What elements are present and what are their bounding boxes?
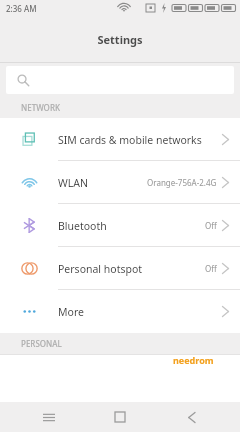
button[interactable]: More: [0, 290, 240, 333]
staticText: Bluetooth: [58, 219, 107, 233]
button[interactable]: Personal hotspot: [0, 247, 240, 290]
staticText: Off: [205, 220, 217, 231]
staticText: Orange-756A-2.4G: [147, 177, 217, 188]
button[interactable]: Bluetooth: [0, 204, 240, 247]
staticText: PERSONAL: [21, 338, 62, 349]
button[interactable]: WLAN: [0, 161, 240, 204]
staticText: 2:36 AM: [6, 3, 37, 14]
staticText: Personal hotspot: [58, 262, 143, 276]
button[interactable]: Back: [173, 402, 209, 432]
button[interactable]: Search settings: [6, 66, 234, 94]
button[interactable]: Home: [102, 402, 138, 432]
button[interactable]: Menu: [31, 402, 67, 432]
staticText: More: [58, 305, 84, 319]
staticText: Off: [205, 263, 217, 274]
staticText: NETWORK: [21, 102, 60, 113]
staticText: needrom: [173, 354, 214, 366]
staticText: WLAN: [58, 176, 88, 190]
staticText: SIM cards & mobile networks: [58, 133, 202, 147]
button[interactable]: SIM cards & mobile networks: [0, 118, 240, 161]
staticText: Settings: [97, 32, 143, 47]
